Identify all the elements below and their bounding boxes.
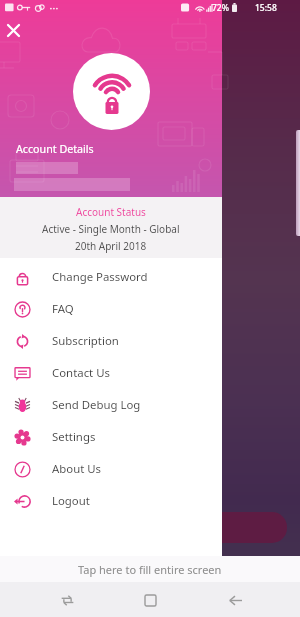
button[interactable]: Recent apps <box>49 585 85 615</box>
button[interactable]: About Us <box>0 453 222 485</box>
button[interactable]: Contact Us <box>0 357 222 389</box>
button[interactable]: Back <box>217 585 253 615</box>
staticText: 15:58 <box>255 2 277 14</box>
staticText: 20th April 2018 <box>75 239 147 253</box>
staticText: Tap here to fill entire screen <box>78 562 222 577</box>
button[interactable]: Close drawer <box>2 19 24 41</box>
button[interactable]: Subscription <box>0 325 222 357</box>
button[interactable]: Settings <box>0 421 222 453</box>
staticText: FAQ <box>52 301 74 317</box>
staticText: About Us <box>52 461 102 477</box>
button[interactable]: Logout <box>0 485 222 517</box>
staticText: Settings <box>52 429 96 445</box>
staticText: Subscription <box>52 333 119 349</box>
button[interactable]: Home <box>132 585 168 615</box>
staticText: Logout <box>52 493 90 509</box>
staticText: Active - Single Month - Global <box>42 222 180 236</box>
button[interactable]: Change Password <box>0 261 222 293</box>
staticText: Contact Us <box>52 365 110 381</box>
staticText: Account Status <box>76 205 146 219</box>
staticText: Account Details <box>16 142 94 157</box>
button[interactable]: Tap here to fill entire screen <box>0 556 300 582</box>
staticText: Change Password <box>52 269 148 285</box>
staticText: 72% <box>212 2 229 14</box>
button[interactable]: FAQ <box>0 293 222 325</box>
button[interactable]: Send Debug Log <box>0 389 222 421</box>
staticText: Send Debug Log <box>52 397 141 413</box>
